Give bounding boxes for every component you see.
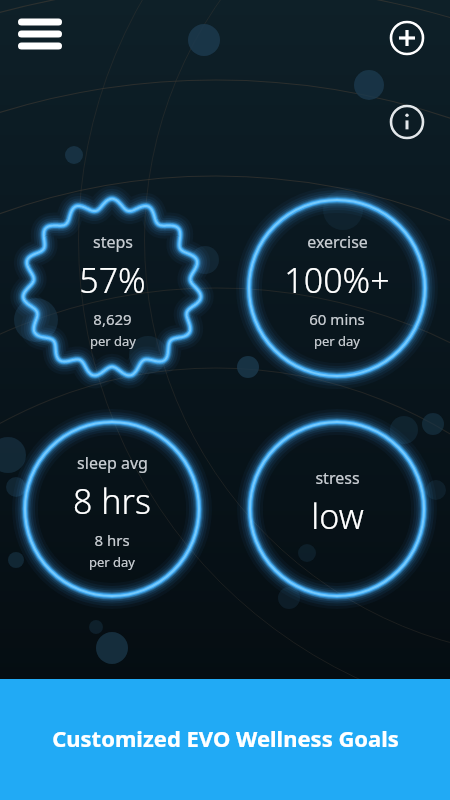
button[interactable]: Menu	[8, 8, 72, 62]
staticText: 8,629	[93, 309, 132, 329]
staticText: steps	[93, 231, 133, 253]
button[interactable]: Information	[385, 100, 429, 144]
staticText: Customized EVO Wellness Goals	[52, 723, 399, 753]
button[interactable]: steps	[28, 204, 196, 372]
staticText: exercise	[307, 231, 368, 253]
button[interactable]: stress	[250, 422, 424, 596]
staticText: 8 hrs	[73, 478, 151, 524]
staticText: per day	[90, 332, 136, 350]
staticText: 60 mins	[309, 309, 365, 329]
staticText: stress	[315, 467, 360, 489]
staticText: low	[311, 493, 364, 539]
staticText: 57%	[79, 257, 146, 303]
button[interactable]: sleep avg	[25, 422, 199, 596]
staticText: per day	[89, 553, 135, 571]
staticText: 100%+	[284, 257, 390, 303]
button[interactable]: Add goal	[385, 16, 429, 60]
staticText: per day	[314, 332, 360, 350]
button[interactable]: exercise	[249, 200, 425, 376]
staticText: 8 hrs	[94, 530, 130, 550]
button[interactable]: Customized EVO Wellness Goals	[0, 679, 450, 800]
staticText: sleep avg	[77, 452, 148, 474]
